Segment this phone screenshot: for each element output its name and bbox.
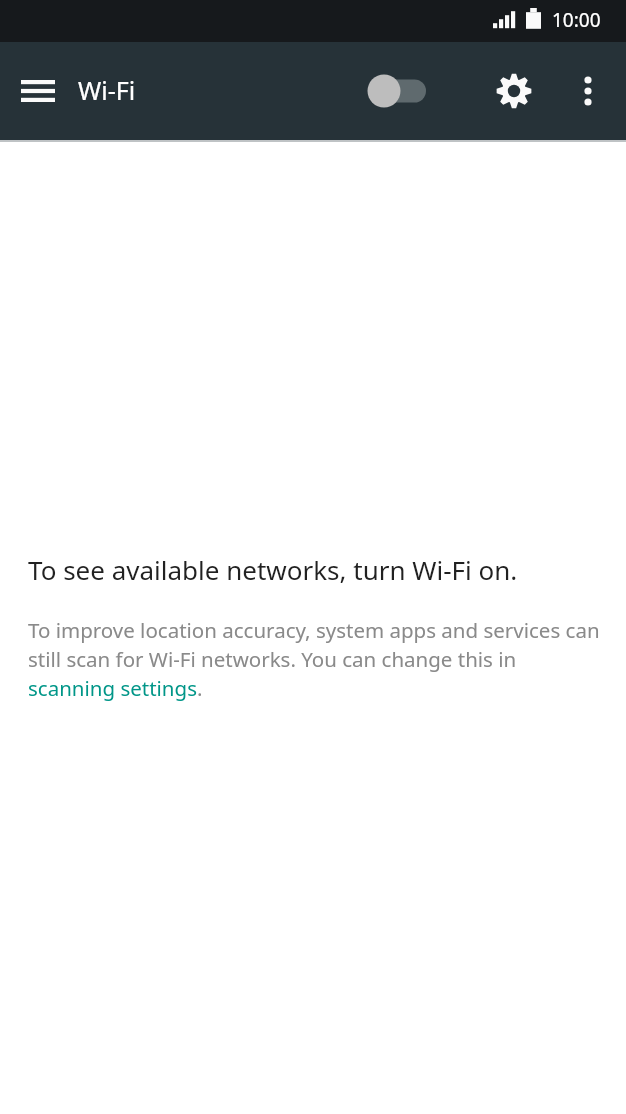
staticText: 10:00 — [552, 7, 601, 33]
staticText: Wi-Fi — [78, 73, 136, 107]
button[interactable]: More options — [560, 59, 616, 123]
button[interactable]: Settings — [482, 59, 546, 123]
staticText: To see available networks, turn Wi-Fi on… — [28, 552, 518, 587]
button[interactable]: To improve location accuracy, system app… — [28, 616, 602, 702]
button[interactable]: Open navigation drawer — [6, 59, 70, 123]
button[interactable]: Wi-Fi on off switch — [362, 62, 438, 120]
